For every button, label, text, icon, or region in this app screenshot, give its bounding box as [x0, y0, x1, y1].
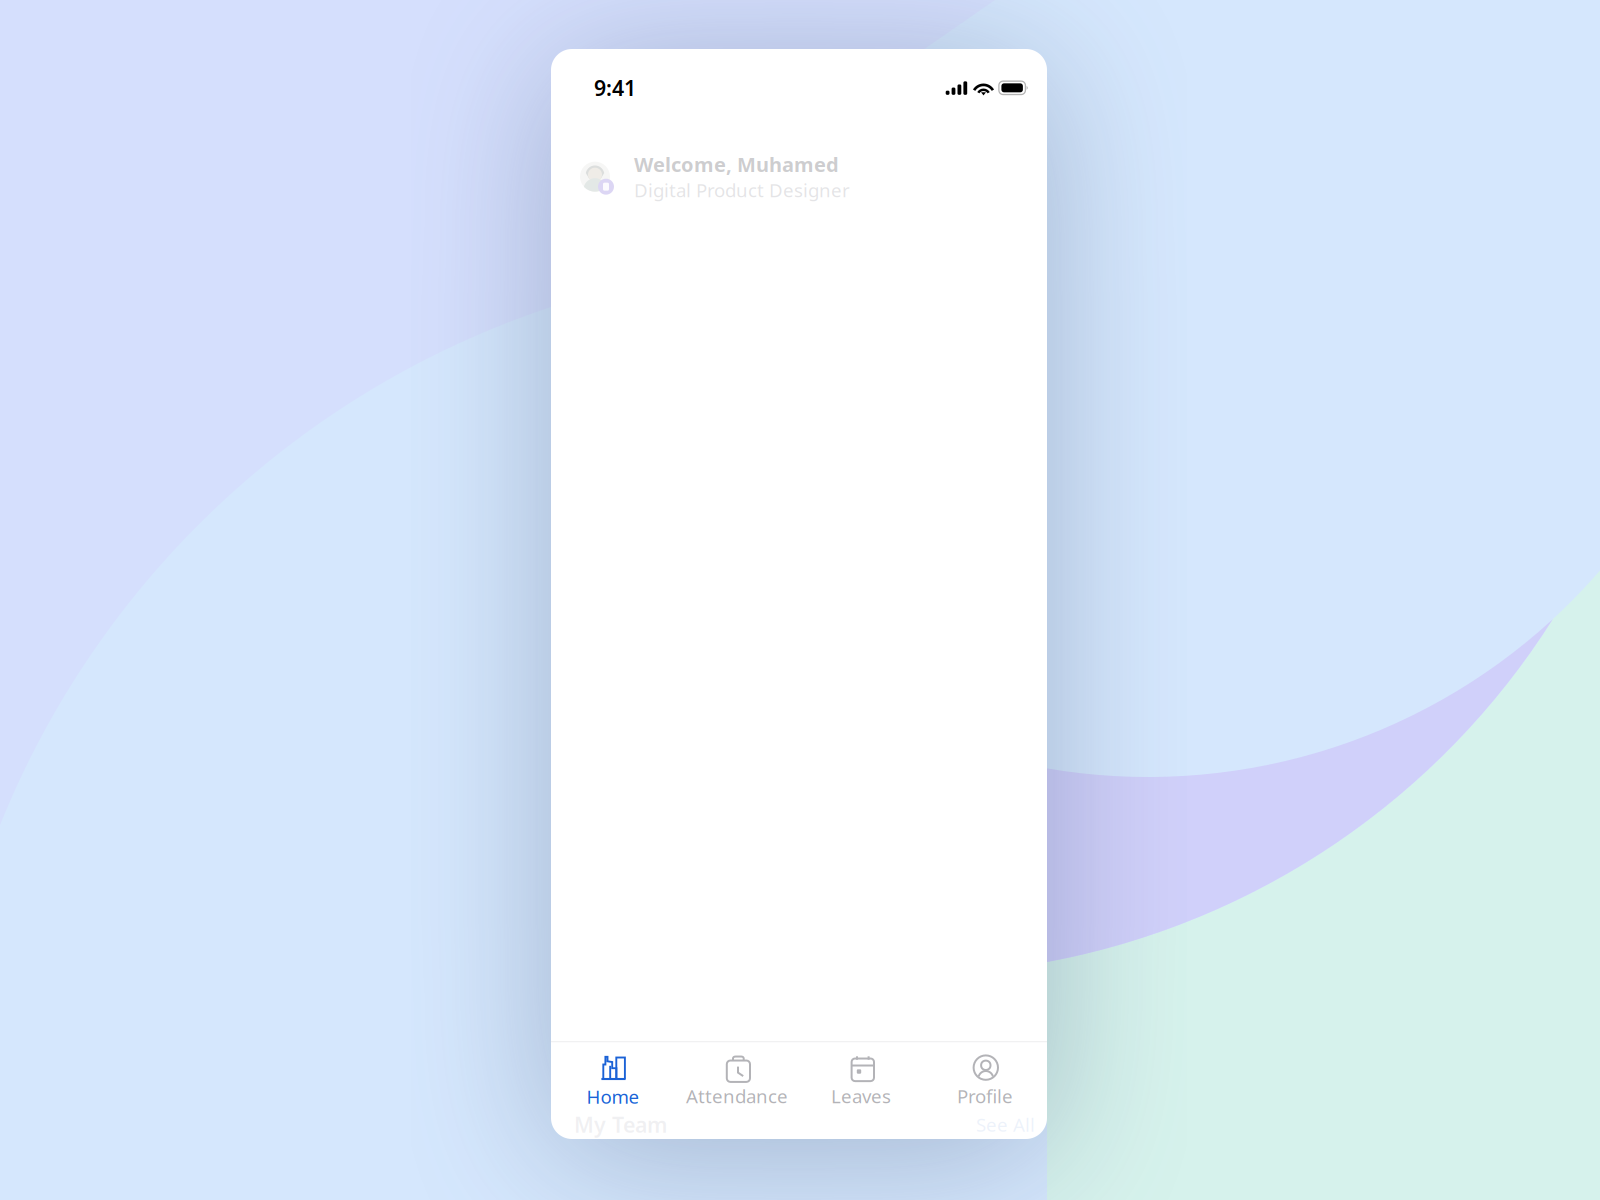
button[interactable]: Leaves: [799, 1043, 923, 1109]
button[interactable]: Profile: [923, 1043, 1047, 1109]
button[interactable]: Home: [551, 1042, 675, 1110]
staticText: 9:41: [594, 74, 636, 102]
staticText: See All: [976, 1112, 1035, 1137]
staticText: Digital Product Designer: [634, 178, 850, 202]
staticText: My Team: [574, 1110, 667, 1139]
staticText: Home: [586, 1084, 639, 1109]
staticText: Profile: [957, 1084, 1013, 1108]
button[interactable]: Attendance: [675, 1043, 799, 1109]
staticText: Welcome, Muhamed: [634, 151, 839, 178]
staticText: Attendance: [686, 1084, 788, 1108]
staticText: Leaves: [831, 1084, 891, 1108]
